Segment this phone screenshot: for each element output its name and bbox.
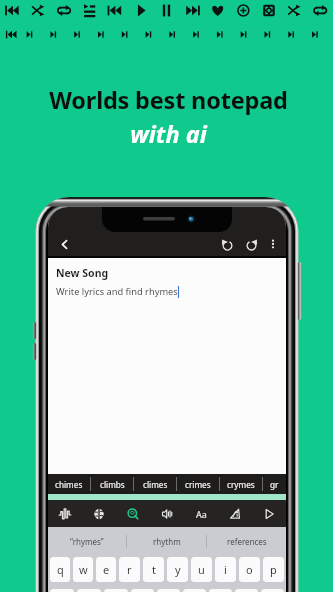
button[interactable]: f: [131, 589, 154, 592]
button[interactable]: r: [119, 557, 140, 582]
staticText: r: [127, 562, 132, 577]
button[interactable]: Rhyme search: [116, 500, 150, 527]
staticText: Aa: [196, 508, 207, 520]
button[interactable]: y: [167, 557, 188, 582]
button[interactable]: i: [215, 557, 236, 582]
staticText: New Song: [56, 266, 109, 280]
button[interactable]: More options: [263, 234, 283, 254]
staticText: t: [152, 562, 156, 577]
staticText: climbs: [100, 479, 125, 490]
button[interactable]: climes: [134, 474, 176, 494]
staticText: references: [227, 536, 267, 547]
button[interactable]: “rhymes”: [48, 527, 126, 556]
button[interactable]: u: [191, 557, 212, 582]
staticText: Write lyrics and find rhymes: [56, 285, 178, 298]
button[interactable]: d: [104, 589, 128, 592]
button[interactable]: k: [235, 589, 258, 592]
button[interactable]: s: [77, 589, 101, 592]
button[interactable]: chimes: [48, 474, 90, 494]
button[interactable]: e: [96, 557, 116, 582]
button[interactable]: t: [143, 557, 164, 582]
button[interactable]: crymes: [220, 474, 262, 494]
staticText: i: [224, 562, 227, 577]
button[interactable]: climbs: [91, 474, 133, 494]
button[interactable]: crimes: [177, 474, 219, 494]
staticText: rhythm: [153, 536, 181, 547]
button[interactable]: j: [209, 589, 232, 592]
button[interactable]: AI: [218, 500, 252, 527]
staticText: u: [198, 562, 205, 577]
staticText: y: [175, 562, 181, 577]
staticText: o: [246, 562, 253, 577]
button[interactable]: w: [73, 557, 93, 582]
button[interactable]: h: [183, 589, 206, 592]
button[interactable]: Ideas: [82, 500, 116, 527]
staticText: w: [79, 562, 88, 577]
staticText: with ai: [130, 118, 207, 150]
button[interactable]: Listen: [150, 500, 184, 527]
staticText: chimes: [55, 479, 83, 490]
button[interactable]: Undo: [215, 232, 239, 256]
staticText: e: [103, 562, 110, 577]
button[interactable]: o: [239, 557, 260, 582]
button[interactable]: Waveform: [48, 500, 82, 527]
button[interactable]: Back: [52, 232, 76, 256]
staticText: Worlds best notepad: [49, 84, 288, 116]
staticText: crimes: [185, 479, 211, 490]
button[interactable]: rhythm: [127, 527, 206, 556]
button[interactable]: g: [157, 589, 180, 592]
staticText: “rhymes”: [70, 536, 104, 547]
button[interactable]: p: [263, 557, 284, 582]
button[interactable]: q: [50, 557, 70, 582]
staticText: q: [57, 562, 64, 577]
button[interactable]: references: [207, 527, 286, 556]
button[interactable]: a: [50, 589, 74, 592]
staticText: crymes: [227, 479, 255, 490]
staticText: climes: [143, 479, 168, 490]
button[interactable]: Text style: [184, 500, 218, 527]
staticText: p: [270, 562, 277, 577]
button[interactable]: Redo: [239, 232, 263, 256]
button[interactable]: Play: [252, 500, 286, 527]
staticText: gr: [270, 479, 279, 490]
button[interactable]: l: [261, 589, 284, 592]
button[interactable]: gr: [263, 474, 285, 494]
